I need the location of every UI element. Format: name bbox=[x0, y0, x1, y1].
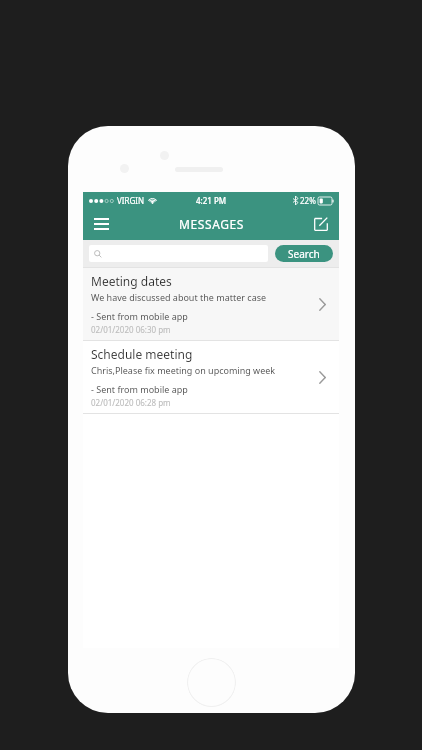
staticText: 02/01/2020 06:28 pm bbox=[91, 397, 171, 408]
staticText: Search bbox=[288, 247, 320, 261]
staticText: Chris,Please fix meeting on upcoming wee… bbox=[91, 364, 276, 376]
staticText: - Sent from mobile app bbox=[91, 383, 188, 395]
staticText: 22% bbox=[300, 195, 316, 206]
staticText: VIRGIN bbox=[117, 195, 145, 206]
button[interactable]: Meeting dates bbox=[83, 267, 339, 340]
staticText: - Sent from mobile app bbox=[91, 310, 188, 322]
staticText: Meeting dates bbox=[91, 273, 172, 289]
staticText: 4:21 PM bbox=[196, 195, 227, 206]
button[interactable]: Menu bbox=[87, 210, 115, 238]
button[interactable]: Search bbox=[275, 245, 333, 262]
button[interactable] bbox=[89, 245, 268, 262]
button[interactable]: Schedule meeting bbox=[83, 340, 339, 413]
staticText: We have discussed about the matter case bbox=[91, 291, 267, 303]
staticText: Schedule meeting bbox=[91, 346, 193, 362]
staticText: 02/01/2020 06:30 pm bbox=[91, 324, 171, 335]
staticText: MESSAGES bbox=[179, 216, 244, 232]
button[interactable]: Compose message bbox=[308, 211, 334, 237]
